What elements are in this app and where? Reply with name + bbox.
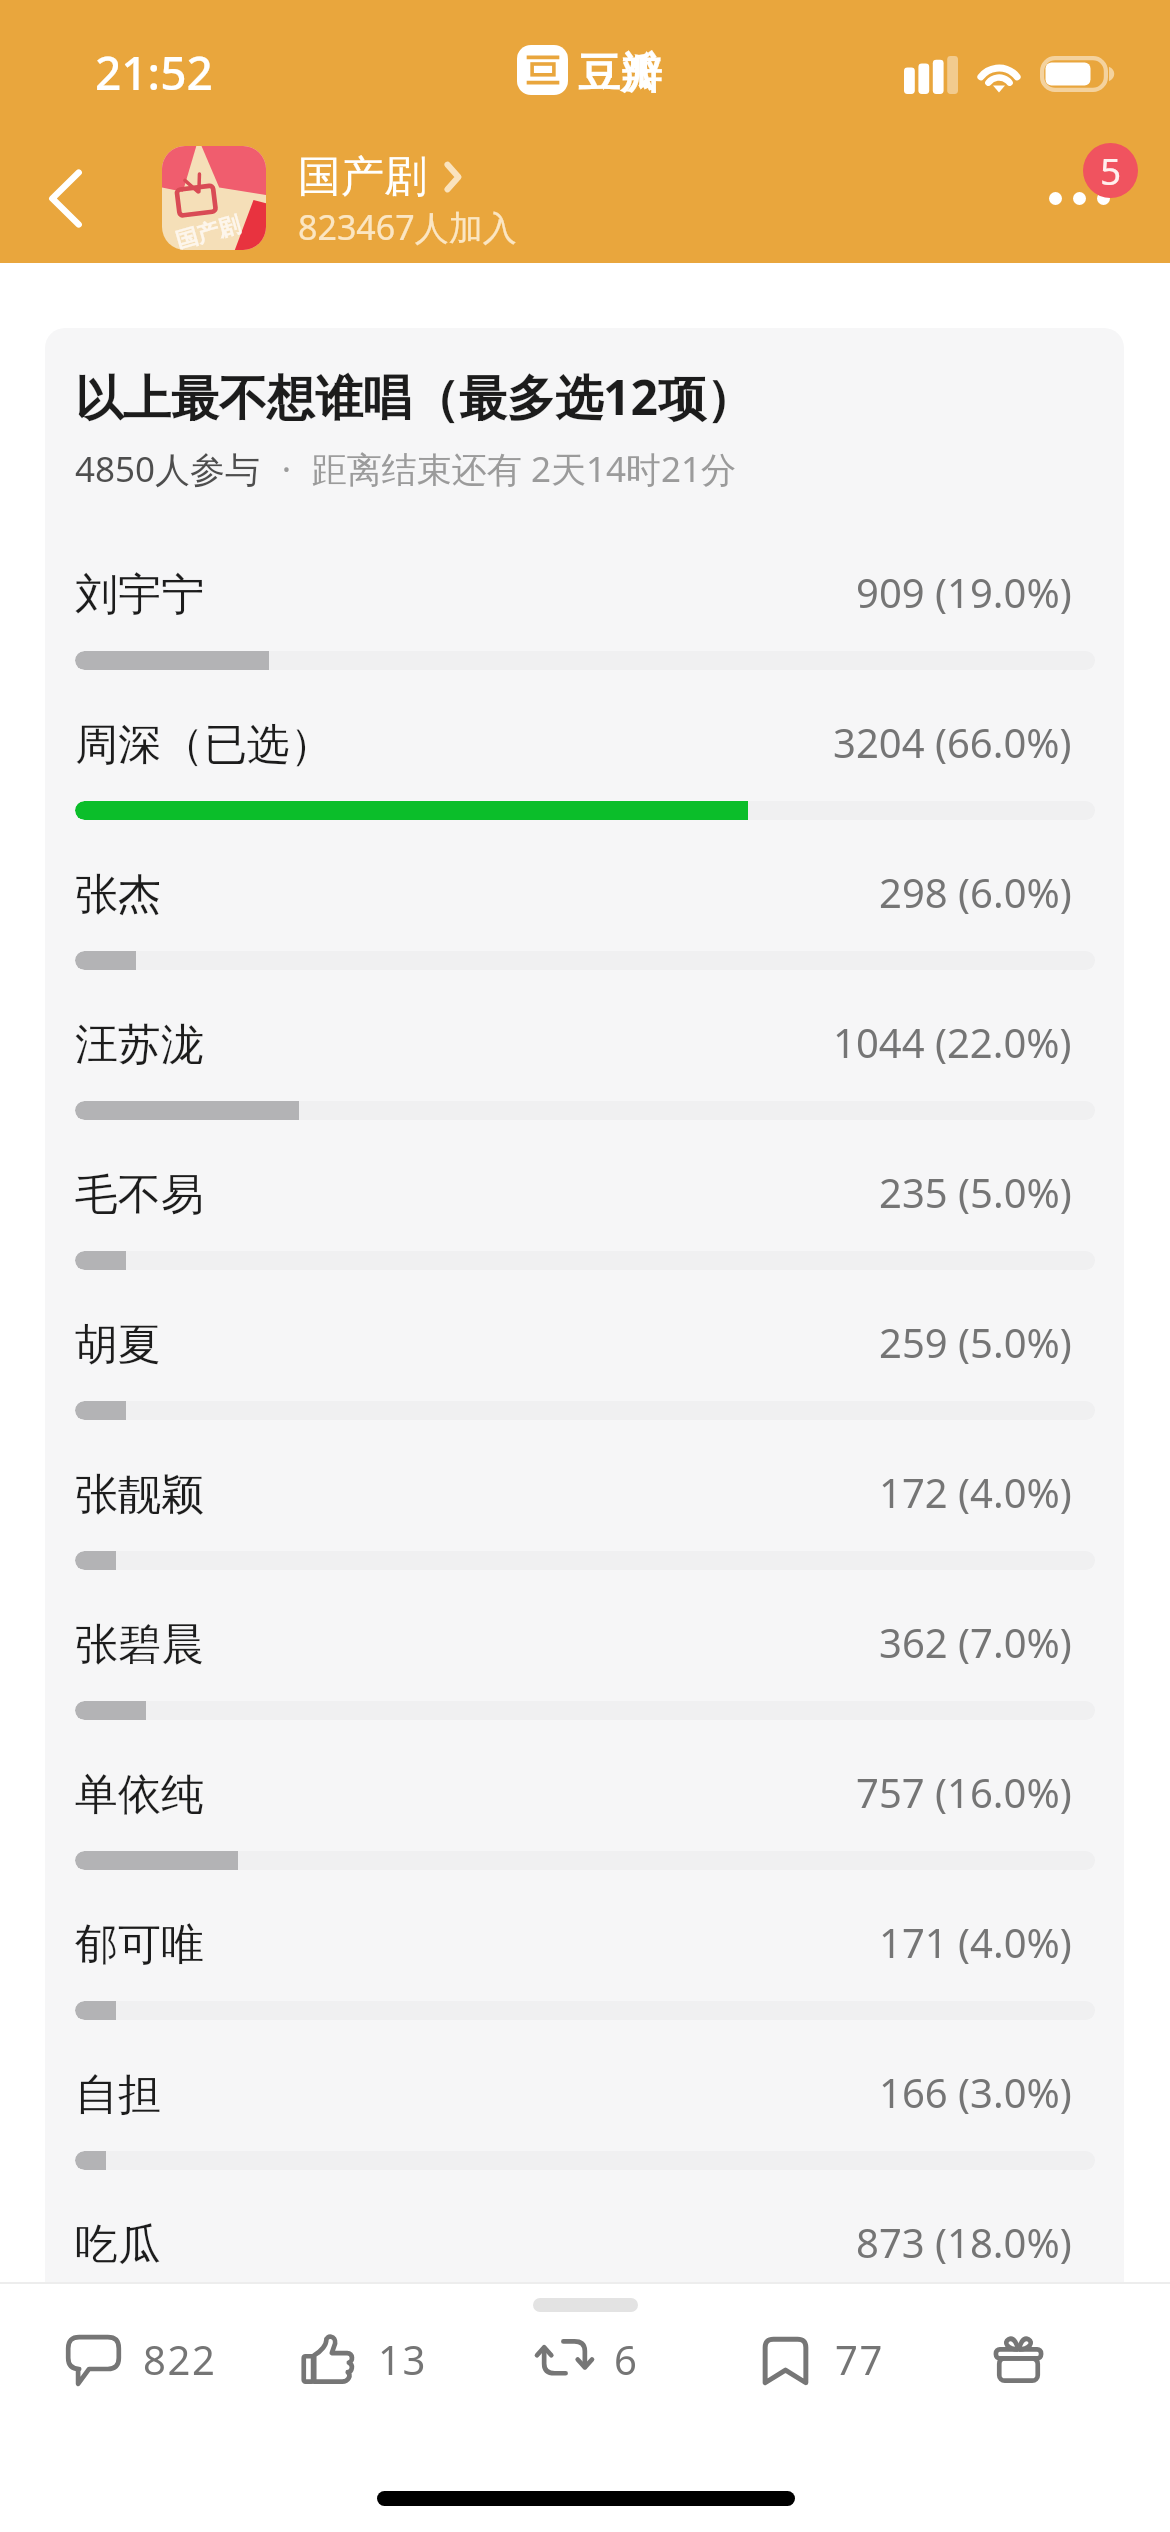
staticText: 自担 — [75, 2068, 161, 2122]
staticText: 21:52 — [95, 41, 213, 104]
staticText: 362 (7.0%) — [879, 1615, 1072, 1669]
staticText: 胡夏 — [75, 1318, 161, 1372]
button[interactable]: Like — [301, 2310, 427, 2410]
button[interactable]: 吃瓜 — [75, 2204, 1095, 2282]
staticText: 172 (4.0%) — [879, 1465, 1072, 1519]
button[interactable]: Bookmark — [758, 2310, 884, 2410]
staticText: 以上最不想谁唱（最多选12项） — [75, 364, 754, 430]
button[interactable]: 自担 — [75, 2054, 1095, 2204]
staticText: 873 (18.0%) — [856, 2215, 1072, 2269]
staticText: 国产剧 — [172, 210, 244, 250]
button[interactable]: Gift — [991, 2310, 1046, 2410]
button[interactable]: 单依纯 — [75, 1754, 1095, 1904]
staticText: 1044 (22.0%) — [833, 1015, 1072, 1069]
staticText: 757 (16.0%) — [856, 1765, 1072, 1819]
button[interactable]: 刘宇宁 — [75, 554, 1095, 704]
staticText: 刘宇宁 — [75, 568, 204, 622]
staticText: 周深（已选） — [75, 718, 333, 772]
staticText: 豆瓣 — [578, 48, 662, 101]
button[interactable]: 张碧晨 — [75, 1604, 1095, 1754]
staticText: 张杰 — [75, 868, 161, 922]
staticText: 郁可唯 — [75, 1918, 204, 1972]
staticText: · 距离结束还有 2天14时21分 — [261, 445, 737, 493]
staticText: 吃瓜 — [75, 2218, 161, 2272]
staticText: 909 (19.0%) — [856, 565, 1072, 619]
staticText: 单依纯 — [75, 1768, 204, 1822]
staticText: 毛不易 — [75, 1168, 204, 1222]
staticText: 171 (4.0%) — [879, 1915, 1072, 1969]
staticText: 298 (6.0%) — [879, 865, 1072, 919]
staticText: 张靓颖 — [75, 1468, 204, 1522]
staticText: 3204 (66.0%) — [833, 715, 1072, 769]
button[interactable]: More options — [1031, 134, 1141, 250]
staticText: 823467人加入 — [298, 204, 517, 250]
button[interactable]: 郁可唯 — [75, 1904, 1095, 2054]
button[interactable]: 张杰 — [75, 854, 1095, 1004]
button[interactable]: 张靓颖 — [75, 1454, 1095, 1604]
staticText: 国产剧 — [298, 150, 427, 204]
button[interactable]: 胡夏 — [75, 1304, 1095, 1454]
button[interactable]: 汪苏泷 — [75, 1004, 1095, 1154]
button[interactable]: Back — [15, 140, 115, 256]
staticText: 4850人参与 — [75, 445, 261, 493]
button[interactable]: Comments — [66, 2310, 217, 2410]
button[interactable]: 毛不易 — [75, 1154, 1095, 1304]
staticText: 259 (5.0%) — [879, 1315, 1072, 1369]
staticText: 235 (5.0%) — [879, 1165, 1072, 1219]
staticText: 汪苏泷 — [75, 1018, 204, 1072]
staticText: 13 — [378, 2332, 427, 2386]
button[interactable]: Repost — [537, 2310, 639, 2410]
staticText: 张碧晨 — [75, 1618, 204, 1672]
button[interactable]: 周深（已选） — [75, 704, 1095, 854]
staticText: 77 — [835, 2332, 884, 2386]
staticText: 822 — [143, 2332, 217, 2386]
staticText: 166 (3.0%) — [879, 2065, 1072, 2119]
button[interactable]: 国产剧 — [162, 140, 517, 256]
staticText: 5 — [1100, 145, 1122, 195]
staticText: 6 — [614, 2332, 639, 2386]
